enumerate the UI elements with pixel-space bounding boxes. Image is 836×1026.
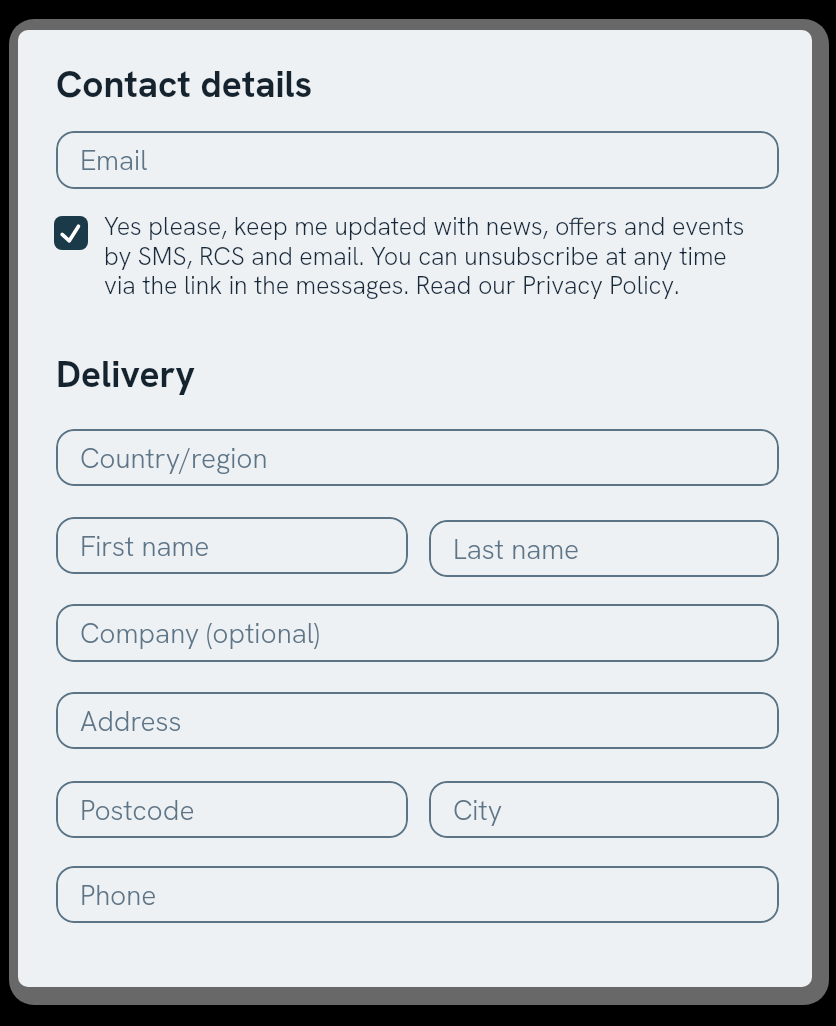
staticText: Country/region	[80, 440, 268, 476]
staticText: Phone	[80, 877, 157, 913]
button[interactable]: Company (optional)	[56, 604, 779, 662]
button[interactable]	[54, 216, 88, 250]
staticText: Email	[80, 142, 148, 178]
button[interactable]: Phone	[56, 866, 779, 923]
button[interactable]: Last name	[429, 520, 779, 577]
button[interactable]: Email	[56, 131, 779, 189]
button[interactable]: First name	[56, 517, 408, 574]
staticText: Address	[80, 703, 182, 739]
button[interactable]: Yes please, keep me updated with news, o…	[104, 210, 745, 301]
button[interactable]: Country/region	[56, 429, 779, 486]
staticText: First name	[80, 528, 210, 564]
staticText: Postcode	[80, 792, 195, 828]
staticText: Last name	[453, 531, 580, 567]
button[interactable]: Postcode	[56, 781, 408, 838]
staticText: Contact details	[56, 60, 313, 108]
staticText: Company (optional)	[80, 615, 320, 651]
staticText: Delivery	[56, 350, 196, 398]
staticText: City	[453, 792, 503, 828]
button[interactable]: Address	[56, 692, 779, 749]
button[interactable]: City	[429, 781, 779, 838]
